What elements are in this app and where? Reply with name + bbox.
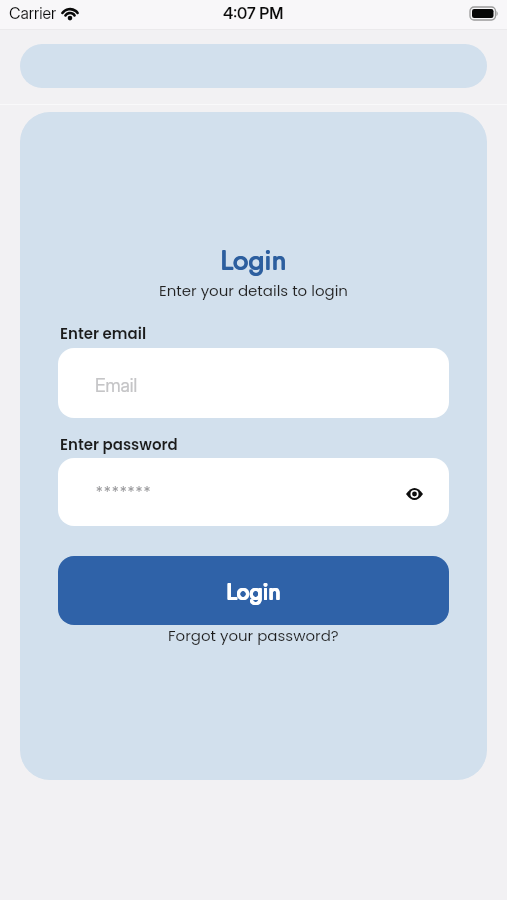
staticText: 4:07 PM [223,3,284,22]
staticText: Carrier [9,3,57,22]
staticText: Enter email [60,323,147,344]
staticText: Login [226,574,281,607]
staticText: Enter your details to login [159,280,348,301]
staticText: Login [220,240,286,280]
button[interactable]: ******* [58,458,449,526]
button[interactable]: Email [58,348,449,418]
staticText: Login [227,575,282,608]
staticText: Enter password [60,434,178,455]
button[interactable]: Forgot your password? [168,625,339,646]
staticText: Email [95,375,138,397]
staticText: Login [227,574,282,607]
staticText: Login [220,239,286,279]
staticText: ******* [96,483,152,500]
staticText: Login [221,239,287,279]
button[interactable] [20,44,487,88]
staticText: Login [221,240,287,280]
button[interactable]: Login [58,556,449,625]
staticText: Login [226,575,281,608]
